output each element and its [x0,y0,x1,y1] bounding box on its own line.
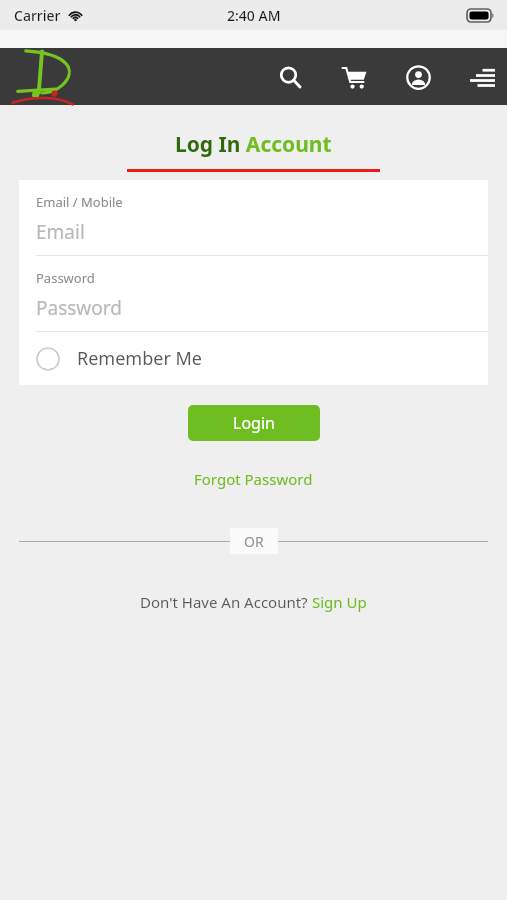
staticText: 2:40 AM [227,6,281,25]
button[interactable]: Home logo [6,48,96,105]
button[interactable]: Forgot Password [0,467,507,491]
button[interactable]: Account [399,58,437,96]
staticText: Don't Have An Account? [140,592,312,612]
button[interactable]: Email / Mobile [19,180,488,255]
staticText: OR [244,532,264,550]
staticText: Log In Account [175,130,332,159]
button[interactable]: Remember Me [19,332,488,385]
staticText: Email [36,219,85,245]
button[interactable]: Password [19,256,488,331]
button[interactable]: Login [188,405,320,441]
staticText: Login [233,412,275,434]
staticText: Password [36,269,95,287]
staticText: Email / Mobile [36,193,123,211]
button[interactable]: Menu [463,58,501,96]
staticText: Sign Up [312,592,367,612]
staticText: Password [36,295,122,321]
button[interactable]: Sign Up [312,592,367,612]
staticText: Forgot Password [194,469,313,489]
button[interactable]: Cart [335,58,373,96]
staticText: Carrier [14,6,61,25]
button[interactable]: Search [271,58,309,96]
staticText: Remember Me [77,346,202,371]
